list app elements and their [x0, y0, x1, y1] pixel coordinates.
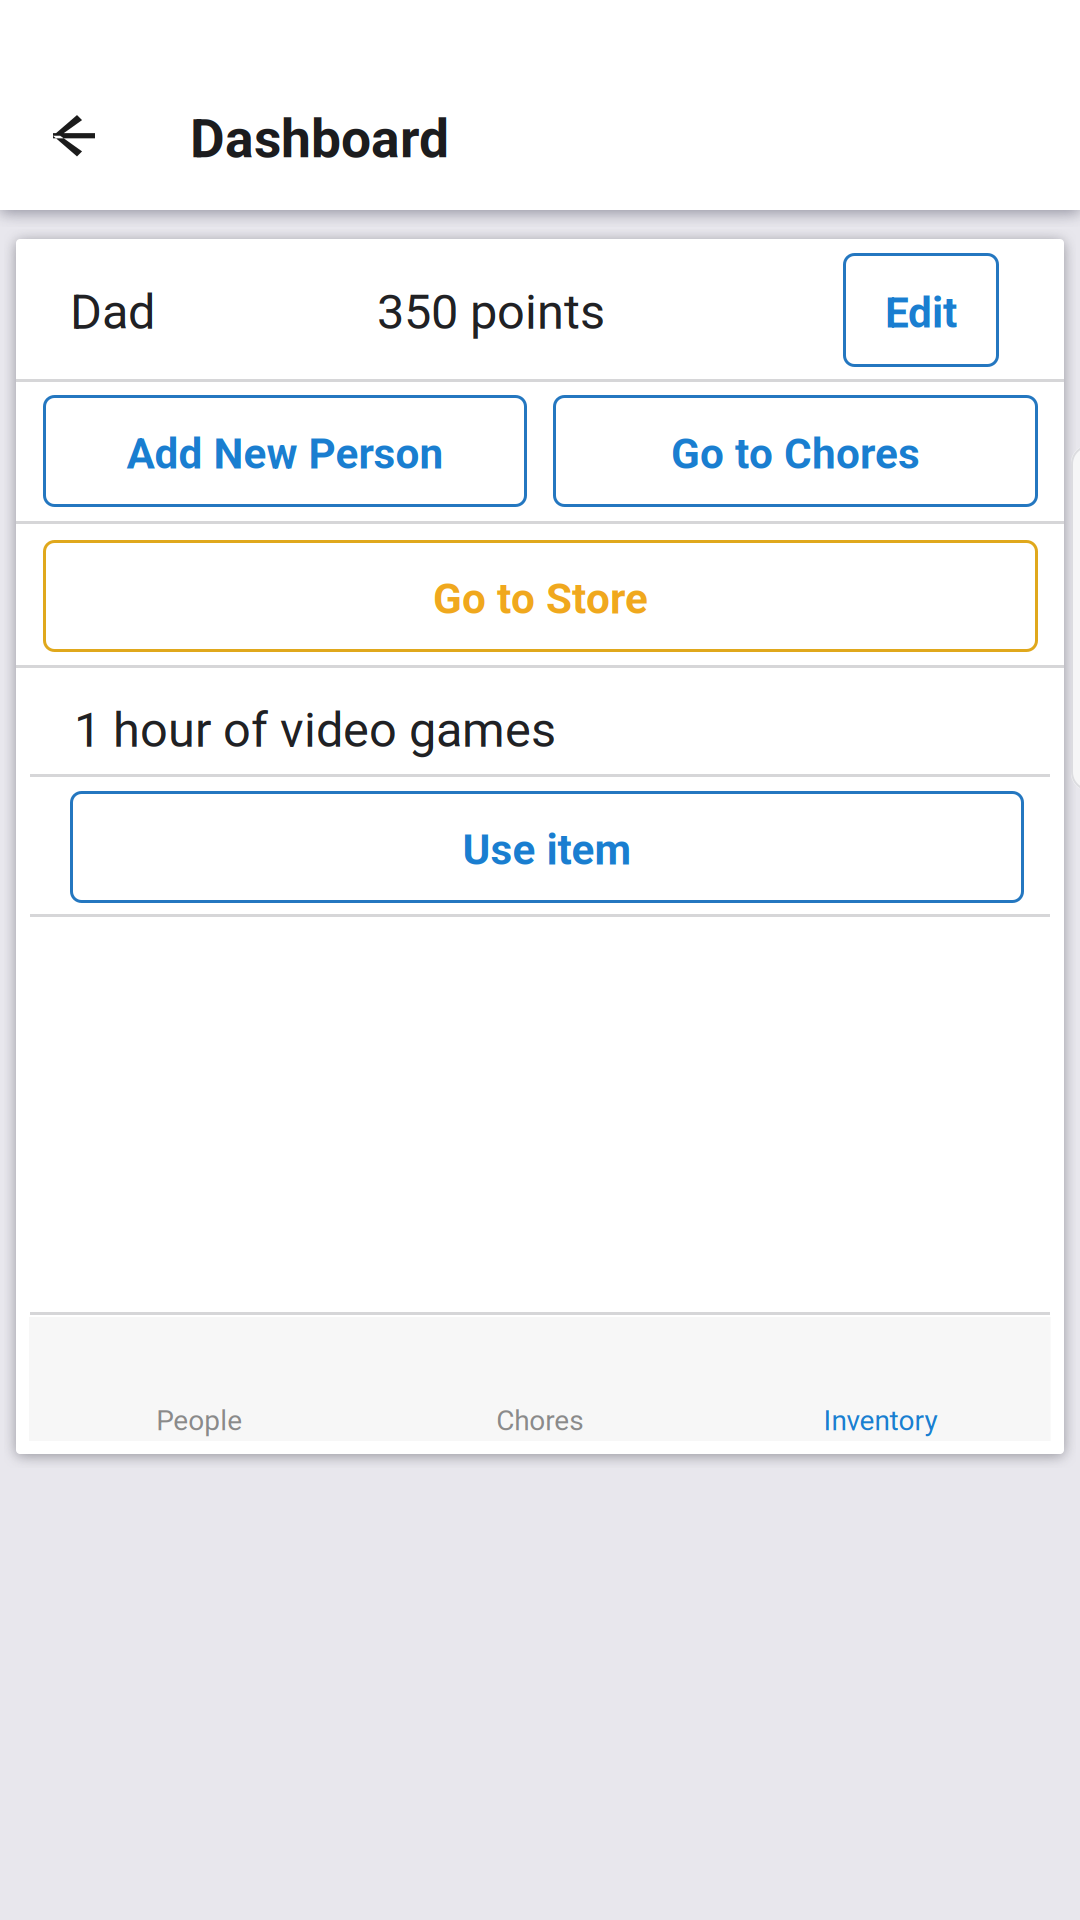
staticText: Inventory: [823, 1404, 937, 1437]
button[interactable]: Back: [15, 68, 133, 204]
staticText: Edit: [885, 288, 957, 338]
button[interactable]: Edit: [843, 253, 999, 367]
staticText: 1 hour of video games: [74, 701, 556, 758]
staticText: Use item: [462, 825, 631, 875]
staticText: Dashboard: [190, 108, 449, 170]
staticText: Go to Store: [433, 574, 648, 624]
staticText: 350 points: [377, 283, 605, 340]
staticText: Go to Chores: [671, 429, 920, 479]
button[interactable]: Use item: [70, 791, 1024, 903]
button[interactable]: Add New Person: [43, 395, 527, 507]
staticText: People: [156, 1404, 242, 1437]
button[interactable]: Chores: [370, 1317, 710, 1441]
staticText: Add New Person: [126, 429, 443, 479]
staticText: Chores: [496, 1404, 583, 1437]
button[interactable]: Inventory: [710, 1317, 1051, 1441]
button[interactable]: Go to Store: [43, 540, 1038, 652]
button[interactable]: Go to Chores: [553, 395, 1038, 507]
staticText: Dad: [70, 283, 155, 340]
button[interactable]: People: [29, 1317, 369, 1441]
